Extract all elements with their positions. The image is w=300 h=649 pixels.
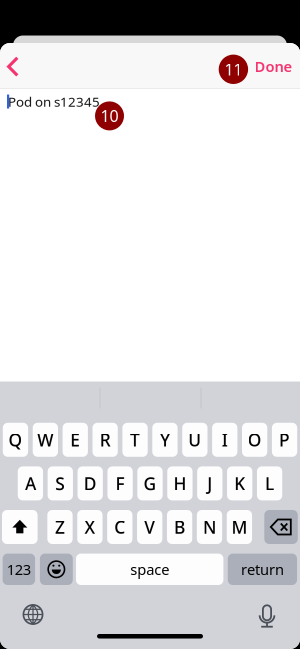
staticText: M [231,515,247,538]
staticText: space [130,560,169,579]
button[interactable]: Next keyboard [16,597,50,631]
staticText: Done [254,56,292,76]
button[interactable]: Z [47,510,73,544]
button[interactable]: V [137,510,162,544]
staticText: W [37,428,53,451]
staticText: return [241,560,284,579]
staticText: O [248,428,262,451]
button[interactable]: return [228,554,297,585]
staticText: R [100,428,111,451]
button[interactable]: I [212,423,237,457]
staticText: F [116,472,125,495]
button[interactable]: N [197,510,222,544]
button[interactable]: 123 [3,554,35,585]
button[interactable]: B [167,510,192,544]
button[interactable]: U [182,423,207,457]
button[interactable]: 11 [214,46,300,85]
button[interactable]: Back [0,43,48,88]
staticText: G [143,472,156,495]
button[interactable]: Emoji [40,554,73,585]
button[interactable]: O [242,423,267,457]
staticText: P [279,428,290,451]
button[interactable]: E [63,423,88,457]
button[interactable]: Shift [2,510,38,544]
staticText: H [173,472,186,495]
staticText: I [222,428,228,451]
staticText: 10 [100,105,118,126]
button[interactable]: P [272,423,297,457]
button[interactable]: F [107,466,133,500]
staticText: Pod on s12345 [8,93,100,110]
staticText: X [84,515,95,538]
staticText: J [207,472,212,495]
staticText: A [25,472,36,495]
staticText: L [265,472,274,495]
staticText: B [174,515,185,538]
staticText: C [114,515,125,538]
button[interactable]: space [76,554,223,585]
button[interactable]: A [18,466,43,500]
button[interactable]: Dictate [250,600,284,634]
staticText: N [203,515,216,538]
button[interactable]: T [122,423,148,457]
staticText: T [130,428,140,451]
staticText: Y [160,428,170,451]
button[interactable]: H [167,466,192,500]
staticText: E [70,428,80,451]
staticText: 11 [224,59,242,80]
button[interactable]: X [77,510,102,544]
button[interactable]: C [107,510,132,544]
button[interactable]: G [137,466,163,500]
staticText: Z [55,515,65,538]
button[interactable]: D [77,466,103,500]
button[interactable]: Y [152,423,178,457]
button[interactable]: M [227,510,252,544]
button[interactable]: Q [3,423,28,457]
button[interactable]: W [33,423,58,457]
staticText: 123 [7,560,31,579]
button[interactable]: L [257,466,282,500]
staticText: Q [8,428,22,451]
button[interactable]: R [92,423,118,457]
staticText: K [234,472,245,495]
staticText: S [55,472,65,495]
staticText: V [144,515,155,538]
button[interactable]: Delete [264,510,298,544]
staticText: U [188,428,201,451]
staticText: D [84,472,97,495]
button[interactable]: J [197,466,222,500]
button[interactable]: S [48,466,73,500]
button[interactable]: K [227,466,252,500]
